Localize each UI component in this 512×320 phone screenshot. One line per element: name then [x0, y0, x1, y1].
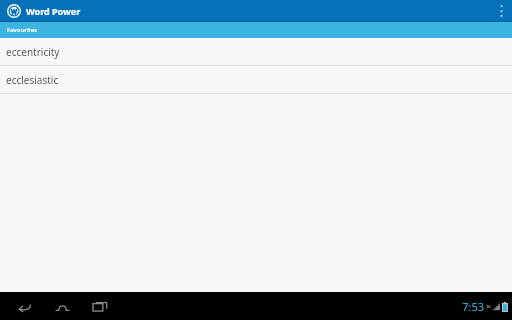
- staticText: eccentricity: [6, 45, 60, 59]
- button[interactable]: Home: [48, 292, 76, 320]
- button[interactable]: ecclesiastic: [0, 66, 512, 94]
- staticText: 16: [486, 304, 491, 309]
- staticText: Favourites: [7, 26, 38, 34]
- button[interactable]: More options: [490, 0, 512, 21]
- staticText: ecclesiastic: [6, 73, 59, 87]
- staticText: Word Power: [26, 5, 81, 17]
- button[interactable]: Favourites: [0, 22, 110, 38]
- staticText: 7:53: [462, 299, 484, 314]
- button[interactable]: Recent apps: [86, 292, 114, 320]
- button[interactable]: eccentricity: [0, 38, 512, 66]
- button[interactable]: Back: [10, 292, 38, 320]
